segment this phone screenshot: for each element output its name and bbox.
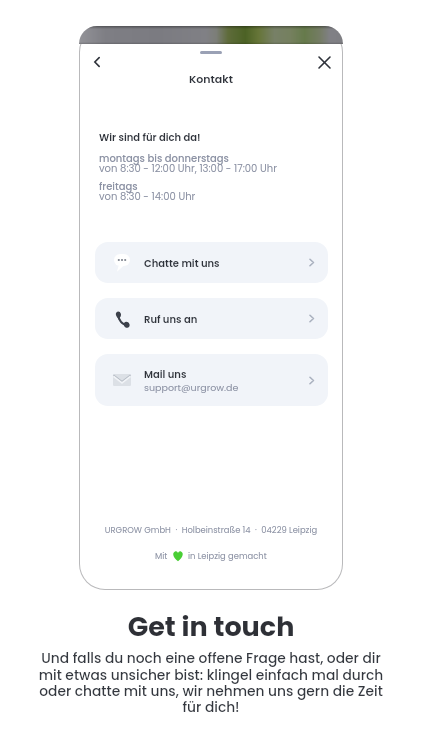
staticText: Kontakt <box>0 71 422 86</box>
staticText: in Leipzig gemacht <box>188 550 267 562</box>
button[interactable]: Back <box>87 52 107 72</box>
staticText: von 8:30 - 14:00 Uhr <box>99 189 196 203</box>
button[interactable]: Mail uns <box>95 354 328 406</box>
staticText: von 8:30 - 12:00 Uhr, 13:00 - 17:00 Uhr <box>99 161 277 175</box>
button[interactable]: Close <box>314 52 334 72</box>
staticText: Mit <box>155 550 168 562</box>
staticText: Und falls du noch eine offene Frage hast… <box>34 649 388 716</box>
staticText: Chatte mit uns <box>144 256 220 270</box>
staticText: Get in touch <box>0 608 422 646</box>
button[interactable]: Ruf uns an <box>95 298 328 339</box>
staticText: URGROW GmbH · Holbeinstraße 14 · 04229 L… <box>0 524 422 536</box>
staticText: Mail uns <box>144 367 187 381</box>
staticText: support@urgrow.de <box>144 381 239 394</box>
staticText: montags bis donnerstags <box>99 151 229 165</box>
button[interactable]: Chatte mit uns <box>95 242 328 283</box>
staticText: freitags <box>99 179 138 193</box>
staticText: Wir sind für dich da! <box>99 130 201 144</box>
staticText: Ruf uns an <box>144 312 198 326</box>
